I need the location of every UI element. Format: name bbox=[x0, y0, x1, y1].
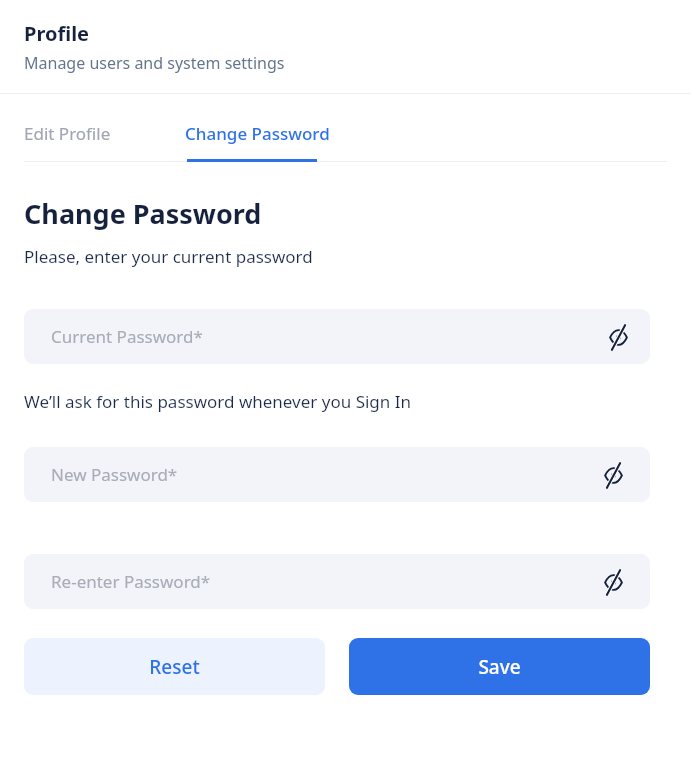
button[interactable]: Re-enter Password* bbox=[24, 554, 650, 609]
staticText: Reset bbox=[149, 654, 200, 680]
staticText: Re-enter Password* bbox=[51, 570, 211, 593]
staticText: Current Password* bbox=[51, 325, 203, 348]
staticText: Save bbox=[478, 654, 521, 680]
staticText: Edit Profile bbox=[24, 122, 111, 144]
button[interactable]: Save bbox=[349, 638, 650, 695]
staticText: New Password* bbox=[51, 463, 178, 486]
button[interactable]: Current Password* bbox=[24, 309, 650, 364]
button[interactable]: Show password bbox=[598, 460, 628, 490]
staticText: We’ll ask for this password whenever you… bbox=[24, 390, 412, 413]
button[interactable]: Show password bbox=[603, 322, 633, 352]
staticText: Profile bbox=[24, 20, 90, 47]
staticText: Change Password bbox=[24, 195, 262, 232]
staticText: Manage users and system settings bbox=[24, 52, 285, 74]
button[interactable]: Show password bbox=[598, 567, 628, 597]
button[interactable]: Edit Profile bbox=[24, 94, 123, 162]
staticText: Change Password bbox=[185, 122, 330, 144]
staticText: Please, enter your current password bbox=[24, 245, 313, 268]
button[interactable]: New Password* bbox=[24, 447, 650, 502]
button[interactable]: Reset bbox=[24, 638, 325, 695]
button[interactable]: Change Password bbox=[185, 94, 330, 162]
